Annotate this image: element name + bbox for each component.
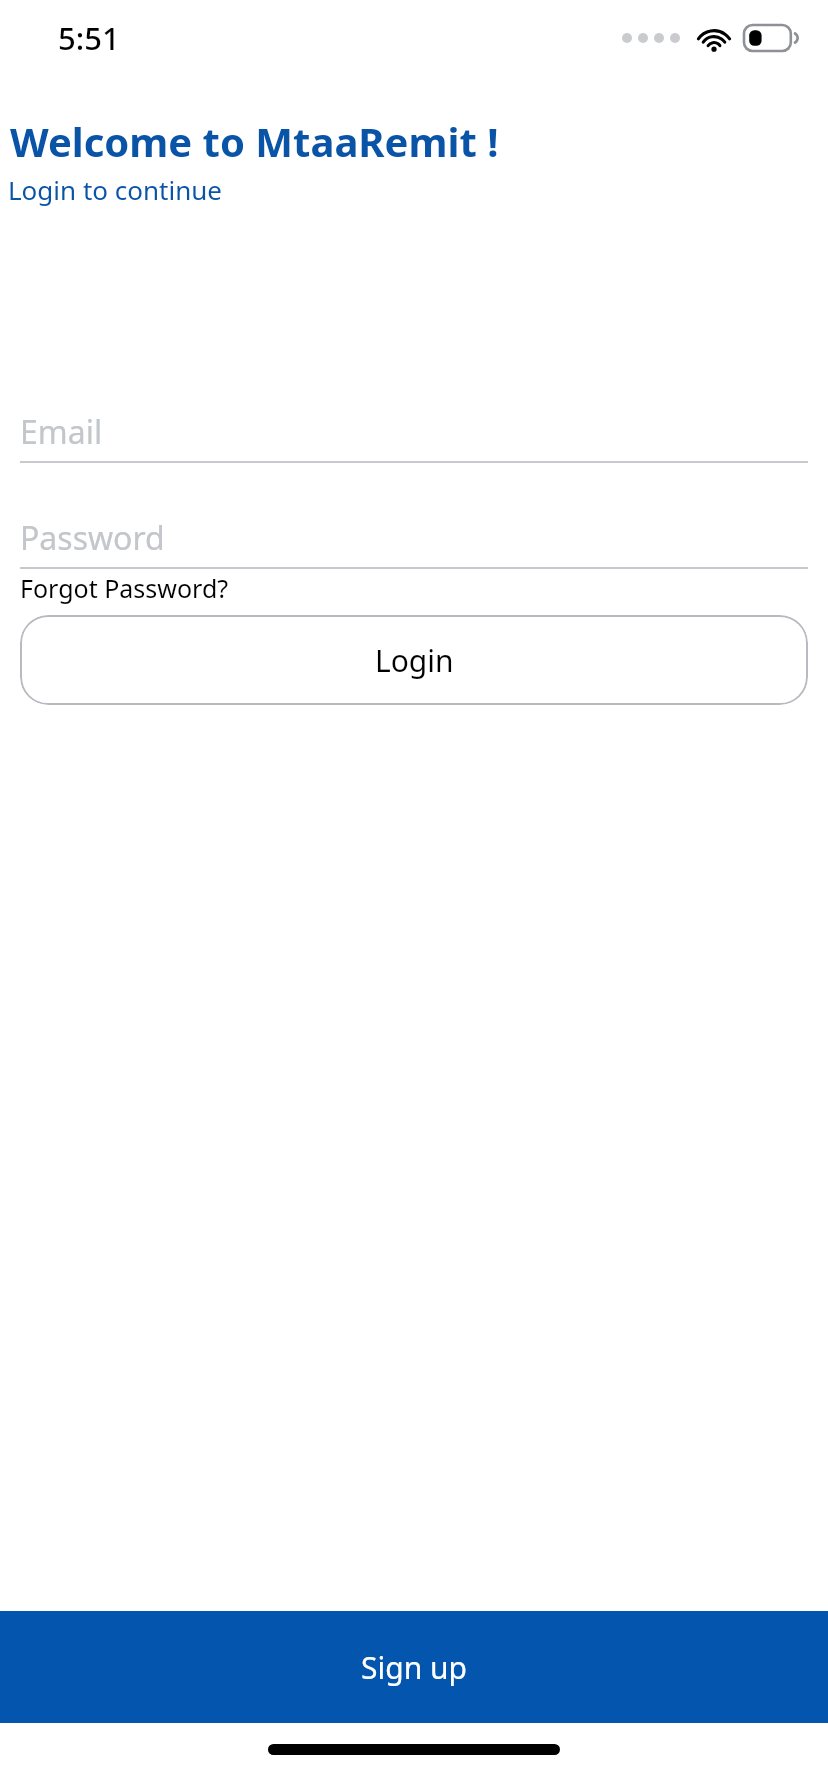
button[interactable]: Password <box>20 509 808 569</box>
button[interactable]: Email <box>20 403 808 463</box>
button[interactable]: Forgot Password? <box>20 569 229 605</box>
staticText: 5:51 <box>58 17 120 59</box>
button[interactable]: Sign up <box>0 1611 828 1723</box>
staticText: Login <box>375 640 454 681</box>
staticText: Login to continue <box>8 172 222 207</box>
button[interactable]: Login <box>20 615 808 705</box>
staticText: Password <box>20 516 165 560</box>
staticText: Email <box>20 410 103 454</box>
staticText: Welcome to MtaaRemit ! <box>10 114 499 168</box>
staticText: Sign up <box>361 1647 467 1688</box>
